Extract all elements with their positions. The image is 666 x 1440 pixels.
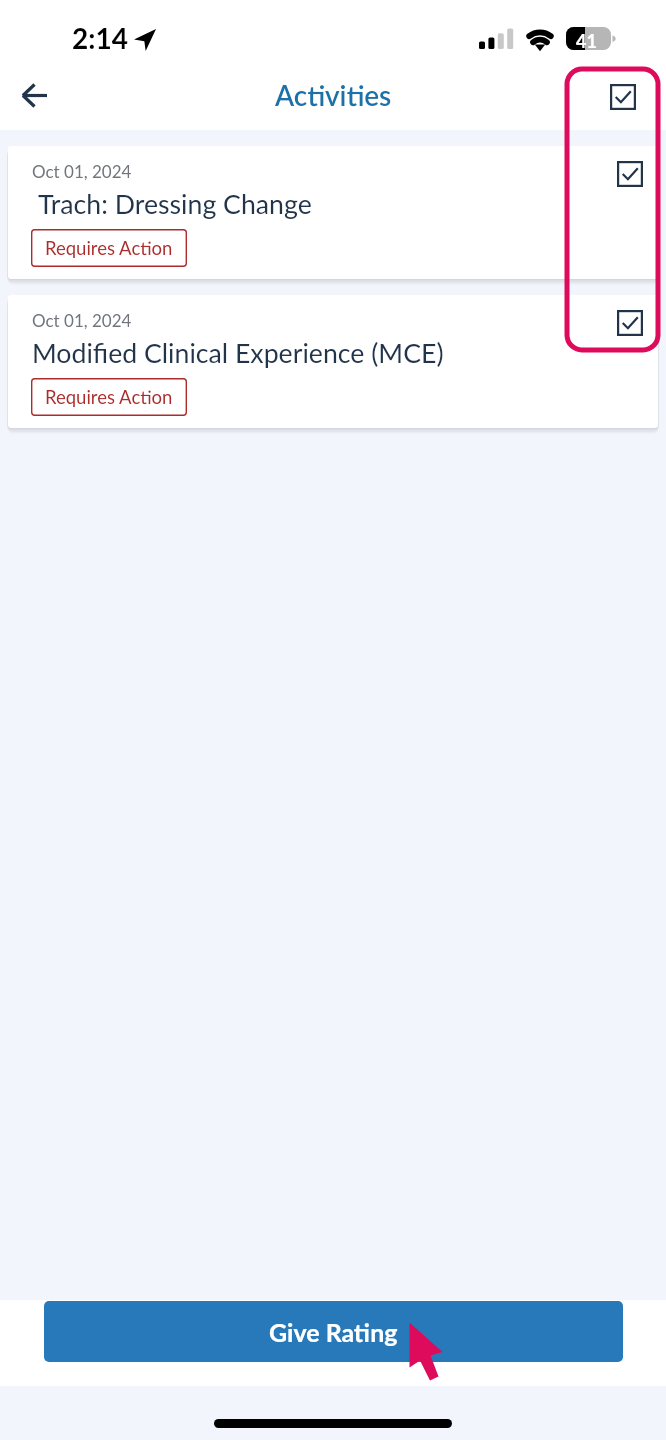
staticText: Oct 01, 2024 <box>32 310 132 330</box>
staticText: Requires Action <box>45 386 173 408</box>
staticText: Trach: Dressing Change <box>38 188 312 220</box>
button[interactable]: Oct 01, 2024 <box>8 295 658 428</box>
button[interactable]: Requires Action <box>31 378 187 416</box>
button[interactable]: Requires Action <box>31 229 187 267</box>
staticText: 41 <box>576 30 597 52</box>
button[interactable]: Select activity <box>608 152 652 196</box>
staticText: Activities <box>275 78 392 112</box>
staticText: Give Rating <box>269 1317 398 1347</box>
staticText: 2:14 <box>72 21 128 55</box>
button[interactable]: Select all <box>601 75 645 119</box>
staticText: Modified Clinical Experience (MCE) <box>32 337 444 369</box>
button[interactable]: Select activity <box>608 301 652 345</box>
button[interactable]: Back <box>12 73 56 117</box>
button[interactable]: Oct 01, 2024 <box>8 146 658 279</box>
staticText: Oct 01, 2024 <box>32 161 132 181</box>
button[interactable]: Give Rating <box>44 1301 623 1362</box>
staticText: Requires Action <box>45 237 173 259</box>
